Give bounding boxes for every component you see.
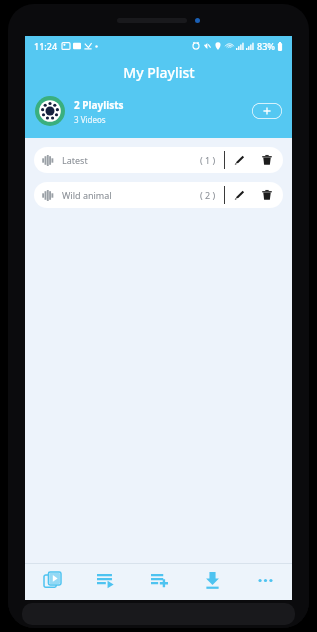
staticText: My Playlist [123,63,195,82]
button[interactable]: Delete playlist [253,182,281,208]
staticText: 3 Videos [74,114,106,125]
staticText: ( 1 ) [200,154,216,166]
button[interactable]: Edit playlist [225,147,253,173]
staticText: 2 Playlists [74,98,124,112]
staticText: 83% [257,40,275,52]
staticText: 11:24 [34,40,58,52]
staticText: Latest [62,154,88,166]
button[interactable]: Delete playlist [253,147,281,173]
button[interactable]: Add playlist [252,103,282,119]
button[interactable]: Latest [34,147,283,173]
button[interactable]: More options [239,564,291,603]
button[interactable]: Playlists [79,564,131,603]
button[interactable]: Add to playlist [133,564,185,603]
button[interactable]: Edit playlist [225,182,253,208]
staticText: ( 2 ) [200,189,216,201]
staticText: Wild animal [62,189,112,201]
button[interactable]: Wild animal [34,182,283,208]
button[interactable]: Downloads [186,564,238,603]
button[interactable]: Video library [26,564,78,603]
